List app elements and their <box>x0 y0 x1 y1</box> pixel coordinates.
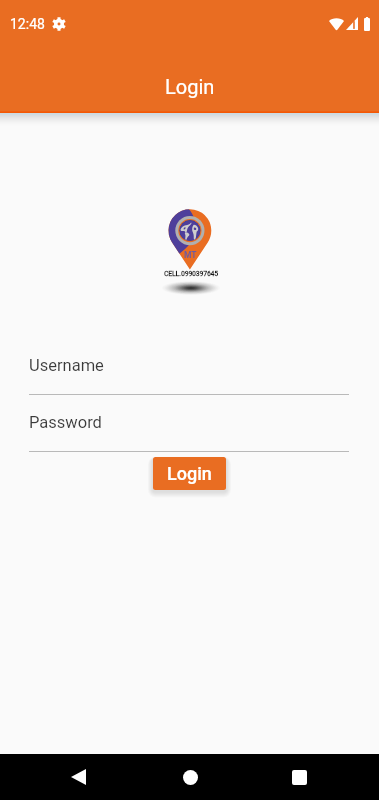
button[interactable]: Home <box>170 757 210 797</box>
staticText: Username <box>29 356 104 375</box>
button[interactable]: Username <box>29 356 349 395</box>
staticText: Password <box>29 413 102 432</box>
staticText: CELL.0990397645 <box>164 269 218 278</box>
staticText: Login <box>165 75 215 98</box>
staticText: 12:48 <box>10 16 45 32</box>
button[interactable]: Back <box>58 757 98 797</box>
staticText: MT <box>184 250 197 260</box>
button[interactable]: Recents <box>279 757 319 797</box>
button[interactable]: Password <box>29 413 349 452</box>
staticText: Login <box>167 463 212 484</box>
button[interactable]: Login <box>153 457 226 490</box>
